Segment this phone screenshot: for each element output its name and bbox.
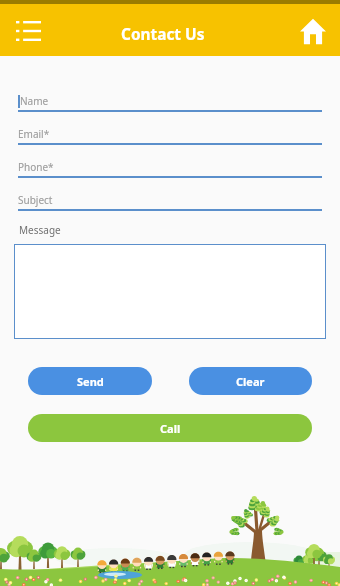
staticText: Email* [18,127,50,141]
button[interactable]: Name [0,91,340,124]
button[interactable]: Send [28,367,152,395]
button[interactable]: Call [28,414,312,442]
button[interactable]: Subject [0,190,340,223]
button[interactable]: Email* [0,124,340,157]
button[interactable]: Clear [189,367,312,395]
staticText: Call [160,421,181,436]
button[interactable]: Phone* [0,157,340,190]
staticText: Phone* [18,160,54,174]
staticText: Contact Us [121,24,205,45]
staticText: Subject [18,193,53,207]
staticText: Clear [236,374,265,389]
staticText: Send [77,374,104,389]
button[interactable]: Menu [9,12,47,50]
button[interactable]: Home [294,12,332,50]
staticText: Name [20,94,49,108]
staticText: Message [19,223,61,237]
